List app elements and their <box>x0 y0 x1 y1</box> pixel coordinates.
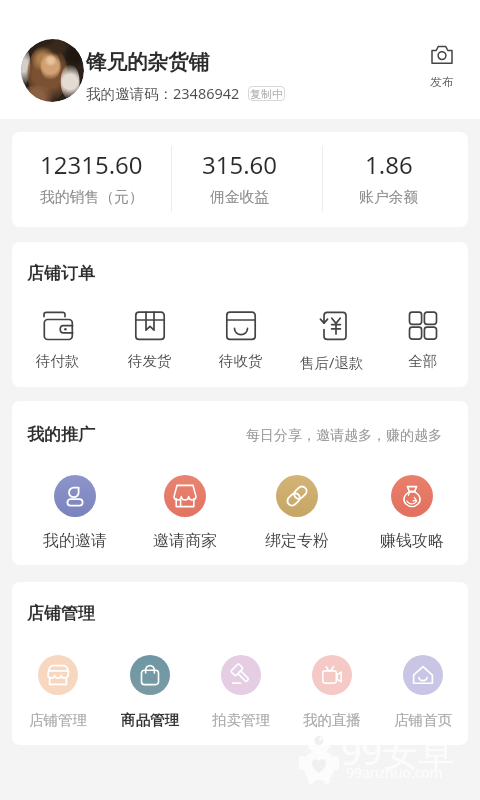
staticText: 复制中 <box>250 87 283 101</box>
button[interactable]: 邀请商家 <box>145 475 225 551</box>
staticText: 待收货 <box>219 352 263 370</box>
staticText: 锋兄的杂货铺 <box>86 49 209 75</box>
button[interactable]: 商品管理 <box>104 655 195 729</box>
button[interactable]: 待发货 <box>104 311 195 370</box>
staticText: 售后/退款 <box>300 352 364 372</box>
button[interactable]: 绑定专粉 <box>257 475 337 551</box>
button[interactable]: 复制中 <box>248 86 285 101</box>
staticText: 1.86 <box>365 148 413 181</box>
staticText: 我的推广 <box>27 424 95 445</box>
button[interactable]: 拍卖管理 <box>195 655 286 729</box>
staticText: 店铺管理 <box>29 711 87 729</box>
staticText: 邀请商家 <box>153 531 217 551</box>
button[interactable]: 我的直播 <box>286 655 377 729</box>
staticText: 99安卓 <box>341 727 455 776</box>
staticText: 店铺订单 <box>27 263 95 284</box>
staticText: 店铺首页 <box>394 711 452 729</box>
button[interactable]: 我的邀请 <box>35 475 115 551</box>
staticText: 待付款 <box>36 352 80 370</box>
button[interactable]: 全部 <box>377 311 468 370</box>
staticText: 每日分享，邀请越多，赚的越多 <box>246 427 442 445</box>
staticText: 我的销售（元） <box>40 188 144 207</box>
staticText: 佣金收益 <box>210 188 270 207</box>
staticText: 99anzhuo.com <box>346 763 443 782</box>
button[interactable]: 1.86 <box>310 132 468 227</box>
button[interactable]: 店铺首页 <box>377 655 468 729</box>
button[interactable]: 12315.60 <box>12 132 171 227</box>
button[interactable]: 店铺管理 <box>12 655 104 729</box>
button[interactable]: 待收货 <box>195 311 286 370</box>
staticText: 绑定专粉 <box>265 531 329 551</box>
button[interactable]: 待付款 <box>12 311 104 370</box>
staticText: 拍卖管理 <box>212 711 270 729</box>
staticText: 赚钱攻略 <box>380 531 444 551</box>
staticText: 发布 <box>430 74 454 89</box>
staticText: 12315.60 <box>40 148 143 181</box>
staticText: 待发货 <box>128 352 172 370</box>
staticText: 全部 <box>408 352 437 370</box>
staticText: 315.60 <box>202 148 278 181</box>
staticText: 店铺管理 <box>27 603 95 624</box>
button[interactable]: Avatar <box>21 39 84 102</box>
staticText: 我的邀请码：23486942 <box>86 83 240 103</box>
button[interactable]: 售后/退款 <box>286 311 377 372</box>
staticText: 账户余额 <box>359 188 419 207</box>
button[interactable]: 赚钱攻略 <box>372 475 452 551</box>
button[interactable]: 发布 <box>420 42 464 89</box>
staticText: 商品管理 <box>121 711 179 729</box>
staticText: 我的直播 <box>303 711 361 729</box>
staticText: 我的邀请 <box>43 531 107 551</box>
button[interactable]: 315.60 <box>172 132 307 227</box>
